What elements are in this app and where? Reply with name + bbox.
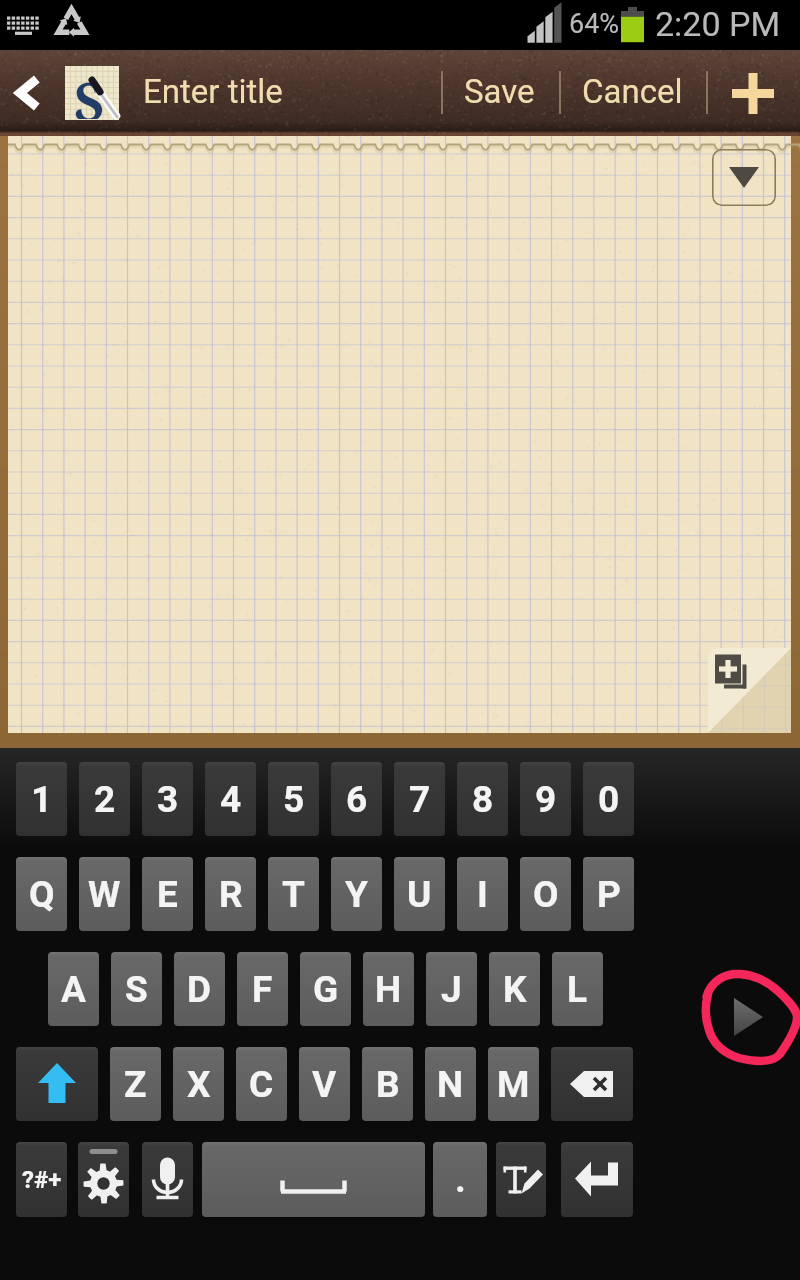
button[interactable]: R [205, 857, 256, 931]
button[interactable]: 3 [142, 762, 193, 836]
button[interactable]: 7 [394, 762, 445, 836]
button[interactable]: 5 [268, 762, 319, 836]
staticText: 4 [220, 778, 242, 821]
staticText: Z [124, 1063, 147, 1106]
staticText: P [597, 873, 621, 916]
staticText: Enter title [143, 72, 283, 111]
button[interactable]: C [236, 1047, 287, 1121]
button[interactable]: Handwriting [496, 1142, 546, 1217]
staticText: 8 [472, 778, 494, 821]
button[interactable]: K [489, 952, 540, 1026]
staticText: 3 [157, 778, 179, 821]
button[interactable]: P [583, 857, 634, 931]
button[interactable]: U [394, 857, 445, 931]
button[interactable]: F [237, 952, 288, 1026]
staticText: T [282, 873, 305, 916]
button[interactable]: Backspace [551, 1047, 633, 1121]
button[interactable]: 8 [457, 762, 508, 836]
staticText: R [219, 873, 243, 916]
staticText: 7 [409, 778, 431, 821]
button[interactable]: Add [706, 50, 800, 136]
button[interactable]: Cancel [559, 50, 706, 136]
button[interactable]: G [300, 952, 351, 1026]
staticText: ?#+ [22, 1166, 62, 1194]
button[interactable]: V [299, 1047, 350, 1121]
button[interactable]: X [173, 1047, 224, 1121]
staticText: V [312, 1063, 337, 1106]
button[interactable]: Shift [16, 1047, 98, 1121]
staticText: D [187, 968, 212, 1011]
staticText: J [441, 968, 462, 1011]
staticText: G [313, 968, 339, 1011]
button[interactable]: 9 [520, 762, 571, 836]
button[interactable]: Play [699, 967, 800, 1069]
staticText: O [533, 873, 559, 916]
button[interactable]: I [457, 857, 508, 931]
button[interactable]: M [488, 1047, 539, 1121]
button[interactable]: Settings [78, 1142, 129, 1217]
button[interactable]: Space [202, 1142, 425, 1217]
button[interactable]: 2 [79, 762, 130, 836]
button[interactable]: J [426, 952, 477, 1026]
button[interactable]: Save [441, 50, 558, 136]
staticText: 5 [283, 778, 305, 821]
button[interactable]: Voice input [142, 1142, 193, 1217]
button[interactable]: B [362, 1047, 413, 1121]
staticText: 2:20 PM [655, 4, 781, 44]
staticText: 0 [598, 778, 620, 821]
button[interactable]: 6 [331, 762, 382, 836]
staticText: . [455, 1158, 466, 1201]
button[interactable]: L [552, 952, 603, 1026]
button[interactable]: E [142, 857, 193, 931]
button[interactable]: 1 [16, 762, 67, 836]
button[interactable]: ?#+ [16, 1142, 67, 1217]
button[interactable]: 4 [205, 762, 256, 836]
button[interactable]: W [79, 857, 130, 931]
button[interactable]: Enter title [0, 50, 441, 136]
button[interactable]: Enter [561, 1142, 633, 1217]
staticText: 64% [569, 8, 620, 40]
staticText: 2 [94, 778, 116, 821]
button[interactable]: N [425, 1047, 476, 1121]
staticText: L [567, 968, 588, 1011]
staticText: A [61, 968, 86, 1011]
staticText: X [187, 1063, 211, 1106]
staticText: E [157, 873, 178, 916]
staticText: K [503, 968, 527, 1011]
staticText: I [477, 873, 488, 916]
button[interactable]: A [48, 952, 99, 1026]
button[interactable]: D [174, 952, 225, 1026]
staticText: H [375, 968, 402, 1011]
button[interactable]: Y [331, 857, 382, 931]
staticText: B [376, 1063, 400, 1106]
staticText: 1 [31, 778, 53, 821]
staticText: N [437, 1063, 464, 1106]
staticText: W [88, 873, 121, 916]
button[interactable]: Q [16, 857, 67, 931]
staticText: Q [29, 873, 55, 916]
button[interactable]: H [363, 952, 414, 1026]
button[interactable]: T [268, 857, 319, 931]
button[interactable]: 0 [583, 762, 634, 836]
button[interactable]: Show options [712, 149, 776, 206]
staticText: Save [464, 72, 535, 111]
staticText: 6 [346, 778, 368, 821]
staticText: C [249, 1063, 274, 1106]
button[interactable]: S [111, 952, 162, 1026]
button[interactable]: Add page [708, 648, 791, 733]
button[interactable]: O [520, 857, 571, 931]
staticText: 9 [535, 778, 557, 821]
staticText: Cancel [582, 72, 683, 111]
staticText: M [497, 1063, 530, 1106]
staticText: S [74, 65, 105, 119]
staticText: U [407, 873, 432, 916]
staticText: Y [345, 873, 368, 916]
staticText: F [252, 968, 273, 1011]
staticText: S [125, 968, 148, 1011]
button[interactable]: . [433, 1142, 487, 1217]
button[interactable]: Navigate up [0, 50, 56, 136]
button[interactable]: Z [110, 1047, 161, 1121]
